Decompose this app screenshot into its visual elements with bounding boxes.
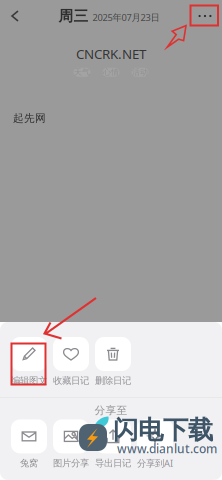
button[interactable]: 收藏日记 — [50, 337, 92, 386]
button[interactable]: 兔窝 — [8, 419, 50, 469]
staticText: 起先网 — [13, 112, 46, 125]
staticText: 心情 — [103, 67, 119, 77]
staticText: 收藏日记 — [53, 375, 89, 386]
button[interactable]: 导出日记 — [92, 419, 134, 469]
staticText: 分享到AI — [137, 457, 173, 469]
button[interactable]: 删除日记 — [92, 337, 134, 386]
staticText: 图片分享 — [53, 457, 89, 469]
staticText: 导出日记 — [95, 457, 131, 469]
button[interactable]: More — [191, 3, 219, 29]
button[interactable]: 编辑图文 — [8, 337, 50, 386]
staticText: 编辑图文 — [11, 375, 47, 386]
button[interactable]: 图片分享 — [50, 419, 92, 469]
staticText: www.dianlut.com — [117, 440, 217, 456]
staticText: 活动 — [132, 67, 148, 77]
button[interactable]: 分享到AI — [134, 419, 176, 469]
button[interactable]: Back — [3, 3, 27, 29]
staticText: 删除日记 — [95, 375, 131, 386]
staticText: 周三 — [58, 7, 88, 25]
staticText: CNCRK.NET — [76, 45, 146, 63]
staticText: 分享至 — [94, 404, 127, 417]
staticText: 兔窝 — [20, 457, 38, 469]
staticText: 2025年07月23日 — [92, 11, 159, 23]
staticText: 闪电下载 — [113, 414, 213, 445]
staticText: 天气 — [74, 67, 90, 77]
